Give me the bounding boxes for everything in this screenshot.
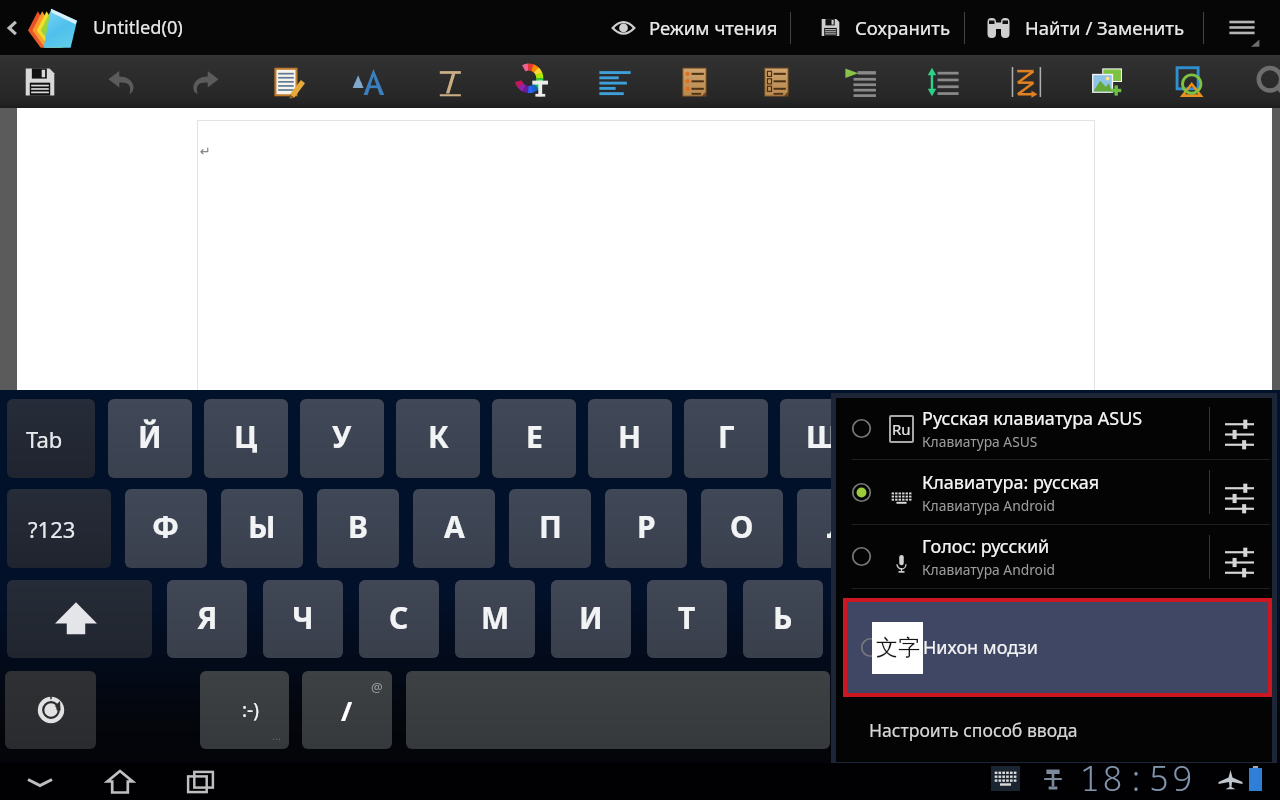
button[interactable]: Р	[605, 489, 687, 568]
button[interactable]: Ъ	[1164, 399, 1248, 478]
button[interactable]: Hide keyboard	[18, 763, 62, 800]
staticText: Л	[827, 506, 849, 547]
button[interactable]: Page break	[985, 55, 1067, 108]
button[interactable]: :-)	[200, 671, 289, 749]
button[interactable]: Д	[893, 489, 975, 568]
button[interactable]: Ru	[836, 398, 1272, 459]
button[interactable]: Клавиатура: русская	[836, 460, 1272, 524]
button[interactable]: Ф	[125, 489, 207, 568]
button[interactable]: Сохранить	[820, 0, 960, 55]
button[interactable]: Ж	[989, 489, 1071, 568]
button[interactable]: Bullet list	[656, 55, 738, 108]
button[interactable]	[1138, 671, 1228, 749]
staticText: @	[371, 678, 383, 696]
button[interactable]: О	[701, 489, 783, 568]
button[interactable]: Х	[1068, 399, 1152, 478]
button[interactable]: Recents	[178, 763, 222, 800]
staticText: О	[730, 506, 754, 547]
button[interactable]	[1181, 489, 1273, 568]
button[interactable]: З	[972, 399, 1056, 478]
button[interactable]	[842, 671, 932, 749]
button[interactable]: Save	[0, 55, 81, 108]
button[interactable]: Edit	[247, 55, 329, 108]
button[interactable]: ?123	[7, 489, 111, 568]
staticText: Б	[869, 597, 889, 638]
staticText: Клавиатура ASUS	[922, 432, 1038, 451]
button[interactable]: Alignment	[574, 55, 656, 108]
staticText: Untitled(0)	[93, 15, 183, 40]
staticText: В	[348, 506, 368, 547]
staticText: М	[481, 597, 510, 638]
button[interactable]: Indent	[820, 55, 902, 108]
button[interactable]: А	[413, 489, 495, 568]
button[interactable]: Ц	[204, 399, 288, 478]
button[interactable]: Settings	[1212, 460, 1266, 524]
staticText: Ф	[152, 506, 180, 547]
button[interactable]: У	[300, 399, 384, 478]
staticText: Щ	[902, 416, 935, 457]
button[interactable]: Shapes	[1149, 55, 1231, 108]
button[interactable]: К	[396, 399, 480, 478]
button[interactable]: Font size	[328, 55, 410, 108]
staticText: Нихон модзи	[923, 635, 1039, 660]
staticText: .	[1067, 597, 1076, 638]
button[interactable]	[5, 671, 96, 749]
staticText: Ъ	[1195, 416, 1218, 457]
button[interactable]: В	[317, 489, 399, 568]
button[interactable]: .	[1031, 580, 1111, 658]
button[interactable]: Е	[492, 399, 576, 478]
button[interactable]: Ы	[221, 489, 303, 568]
button[interactable]: 文字	[847, 602, 1268, 693]
button[interactable]: Г	[684, 399, 768, 478]
button[interactable]	[7, 580, 152, 658]
button[interactable]: Н	[588, 399, 672, 478]
button[interactable]: Italic	[409, 55, 491, 108]
button[interactable]: /	[302, 671, 392, 749]
button[interactable]: Line spacing	[902, 55, 984, 108]
button[interactable]: И	[551, 580, 631, 658]
button[interactable]: Numbered list	[738, 55, 820, 108]
button[interactable]	[1127, 580, 1273, 658]
staticText: Й	[138, 416, 162, 457]
button[interactable]: Ь	[743, 580, 823, 658]
button[interactable]	[946, 671, 1030, 749]
button[interactable]: Ч	[263, 580, 343, 658]
button[interactable]: Tab	[7, 399, 95, 478]
button[interactable]: Settings	[1212, 525, 1266, 588]
button[interactable]: Найти / Заменить	[986, 0, 1195, 55]
staticText: Ь	[773, 597, 793, 638]
button[interactable]: Т	[647, 580, 727, 658]
staticText: Голос: русский	[922, 534, 1050, 559]
button[interactable]: More options	[1216, 0, 1268, 55]
button[interactable]: Голос: русский	[836, 525, 1272, 588]
staticText: Ш	[806, 416, 839, 457]
button[interactable]: П	[509, 489, 591, 568]
button[interactable]: Б	[839, 580, 919, 658]
button[interactable]: Ю	[935, 580, 1015, 658]
staticText: Клавиатура Android	[922, 560, 1056, 579]
button[interactable]: Й	[108, 399, 192, 478]
button[interactable]: Я	[167, 580, 247, 658]
staticText: Настроить способ ввода	[869, 718, 1078, 742]
button[interactable]: Text colour	[492, 55, 574, 108]
button[interactable]: Л	[797, 489, 879, 568]
staticText: Клавиатура: русская	[922, 470, 1100, 495]
button[interactable]: Redo	[164, 55, 246, 108]
button[interactable]: Щ	[876, 399, 960, 478]
button[interactable]: Search	[1231, 55, 1280, 108]
button[interactable]: Home	[98, 763, 142, 800]
button[interactable]: С	[359, 580, 439, 658]
staticText: Ч	[292, 597, 314, 638]
button[interactable]: Insert image	[1066, 55, 1148, 108]
staticText: Э	[1116, 506, 1136, 547]
button[interactable]: Settings	[1212, 398, 1266, 459]
button[interactable]: М	[455, 580, 535, 658]
button[interactable]: Э	[1085, 489, 1167, 568]
button[interactable]: Undo	[81, 55, 163, 108]
button[interactable]: Back	[0, 0, 26, 55]
button[interactable]: Режим чтения	[612, 0, 788, 55]
button[interactable]	[1042, 671, 1126, 749]
button[interactable]: Настроить способ ввода	[836, 697, 1272, 762]
button[interactable]: Ш	[780, 399, 864, 478]
